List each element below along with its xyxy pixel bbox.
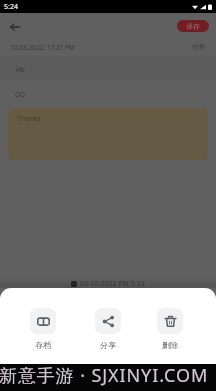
button[interactable]: 分享 [95, 308, 121, 350]
button[interactable]: 分类 [190, 41, 207, 53]
staticText: 删除 [162, 340, 178, 350]
staticText: 存档 [35, 340, 51, 350]
staticText: 5:24 [4, 2, 18, 12]
staticText: QQ [15, 90, 26, 99]
button[interactable]: 删除 [157, 308, 183, 350]
staticText: 保存 [186, 22, 200, 31]
staticText: 分享 [100, 340, 116, 350]
button[interactable]: 保存 [177, 20, 209, 32]
staticText: Hb [16, 65, 25, 74]
staticText: 10.03.2022, 17:21 PM [10, 43, 75, 52]
button[interactable]: 存档 [30, 308, 56, 350]
staticText: Thanks [17, 114, 41, 124]
staticText: 新意手游 · SJXINYI.COM [0, 363, 209, 388]
button[interactable]: Back [5, 17, 24, 36]
staticText: 03-10-2022 PM 5:23 [80, 279, 145, 289]
staticText: 分类 [192, 43, 205, 51]
